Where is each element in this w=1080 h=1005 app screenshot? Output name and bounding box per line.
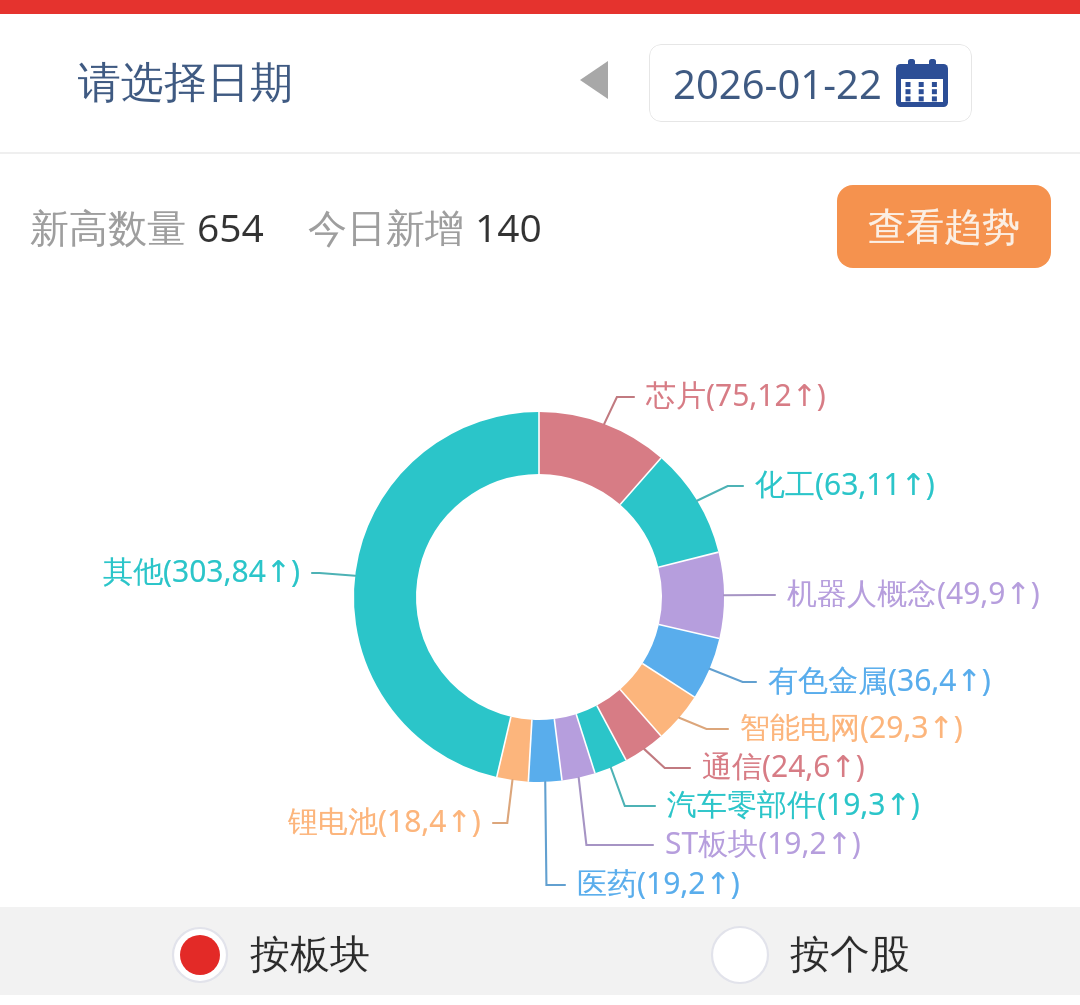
staticText: 化工(63,11↑) bbox=[755, 463, 935, 504]
staticText: 有色金属(36,4↑) bbox=[768, 659, 991, 700]
staticText: 芯片(75,12↑) bbox=[646, 374, 826, 415]
staticText: 查看趋势 bbox=[868, 203, 1020, 251]
staticText: 按个股 bbox=[790, 929, 910, 979]
staticText: 锂电池(18,4↑) bbox=[288, 800, 481, 841]
staticText: 其他(303,84↑) bbox=[103, 550, 300, 591]
staticText: 智能电网(29,3↑) bbox=[740, 706, 963, 747]
staticText: 今日新增 bbox=[308, 200, 475, 253]
button[interactable]: 按个股 bbox=[540, 907, 1080, 995]
button[interactable]: 查看趋势 bbox=[837, 185, 1051, 268]
staticText: 140 bbox=[475, 200, 542, 253]
staticText: 2026-01-22 bbox=[673, 56, 882, 110]
button[interactable]: Previous date bbox=[572, 58, 616, 102]
button[interactable]: 2026-01-22 bbox=[649, 44, 972, 122]
staticText: 通信(24,6↑) bbox=[702, 745, 865, 786]
staticText: 654 bbox=[197, 200, 264, 253]
staticText: 请选择日期 bbox=[78, 56, 293, 110]
staticText: 医药(19,2↑) bbox=[577, 862, 740, 903]
button[interactable]: 按板块 bbox=[0, 907, 540, 995]
staticText: 新高数量 bbox=[30, 200, 197, 253]
staticText: 按板块 bbox=[250, 929, 370, 979]
staticText: 机器人概念(49,9↑) bbox=[787, 572, 1040, 613]
staticText: 汽车零部件(19,3↑) bbox=[667, 783, 920, 824]
staticText: ST板块(19,2↑) bbox=[665, 822, 861, 863]
